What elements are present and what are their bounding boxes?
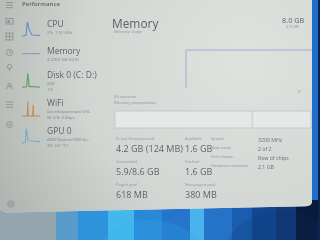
- staticText: Committed: [116, 159, 138, 164]
- staticText: In use (Compressed): [116, 136, 155, 141]
- staticText: 1.6 GB: [185, 165, 213, 177]
- staticText: Available: [185, 136, 202, 141]
- button[interactable]: Menu: [4, 0, 15, 11]
- staticText: 618 MB: [116, 188, 148, 200]
- staticText: Form factor:: [211, 154, 258, 159]
- staticText: 4.2 GB (124 MB): [116, 142, 183, 154]
- button[interactable]: Services: [4, 119, 15, 130]
- button[interactable]: CPU: [22, 18, 110, 44]
- staticText: Cached: [185, 159, 199, 164]
- staticText: 1.6 GB: [185, 142, 213, 154]
- staticText: Disk 0 (C: D:): [47, 69, 97, 81]
- button[interactable]: WiFi: [22, 97, 110, 123]
- button[interactable]: Disk 0 (C: D:): [22, 69, 110, 95]
- staticText: Paged pool: [116, 182, 138, 187]
- staticText: Memory usage: [114, 29, 143, 34]
- staticText: Memory: [112, 15, 159, 31]
- staticText: Hardware reserved:: [211, 163, 258, 168]
- button[interactable]: Details: [4, 99, 15, 110]
- staticText: 0: [298, 89, 301, 95]
- button[interactable]: Startup apps: [4, 62, 15, 73]
- staticText: 60 seconds: [114, 94, 136, 100]
- staticText: Row of chips: [258, 154, 289, 161]
- button[interactable]: Memory: [22, 45, 110, 71]
- staticText: 4.2/8.0 GB (52%): [47, 57, 80, 63]
- staticText: GPU 0: [47, 125, 72, 137]
- staticText: 5.9/8.6 GB: [116, 165, 160, 177]
- staticText: 8.0 GB: [282, 15, 305, 25]
- staticText: 3200 MHz: [258, 136, 283, 143]
- button[interactable]: Processes: [4, 16, 15, 27]
- staticText: 2% 1.91 GHz: [47, 30, 73, 36]
- staticText: 2 of 2: [258, 145, 272, 152]
- staticText: 380 MB: [185, 188, 217, 200]
- button[interactable]: GPU 0: [22, 125, 110, 151]
- staticText: WiFi: [47, 97, 64, 109]
- button[interactable]: App history: [4, 47, 15, 58]
- staticText: Memory: [47, 45, 81, 57]
- button[interactable]: Users: [4, 81, 15, 92]
- staticText: AMD Radeon(TM) Gr... 4% (41 °C): [47, 137, 90, 149]
- button[interactable]: Settings: [5, 198, 16, 209]
- staticText: CPU: [47, 18, 64, 30]
- staticText: Memory composition: [114, 100, 156, 106]
- staticText: Performance: [22, 0, 60, 8]
- staticText: Slots used:: [211, 145, 258, 150]
- staticText: 2.1 GB: [258, 163, 274, 170]
- staticText: 5.9 GB: [286, 24, 299, 30]
- staticText: Szerokopasmowe DSL W: 0 R: 0 Kbps: [47, 109, 91, 121]
- staticText: Speed:: [211, 136, 258, 141]
- staticText: SSD 1%: [47, 81, 55, 93]
- staticText: Non-paged pool: [185, 182, 216, 187]
- button[interactable]: Performance: [4, 31, 15, 42]
